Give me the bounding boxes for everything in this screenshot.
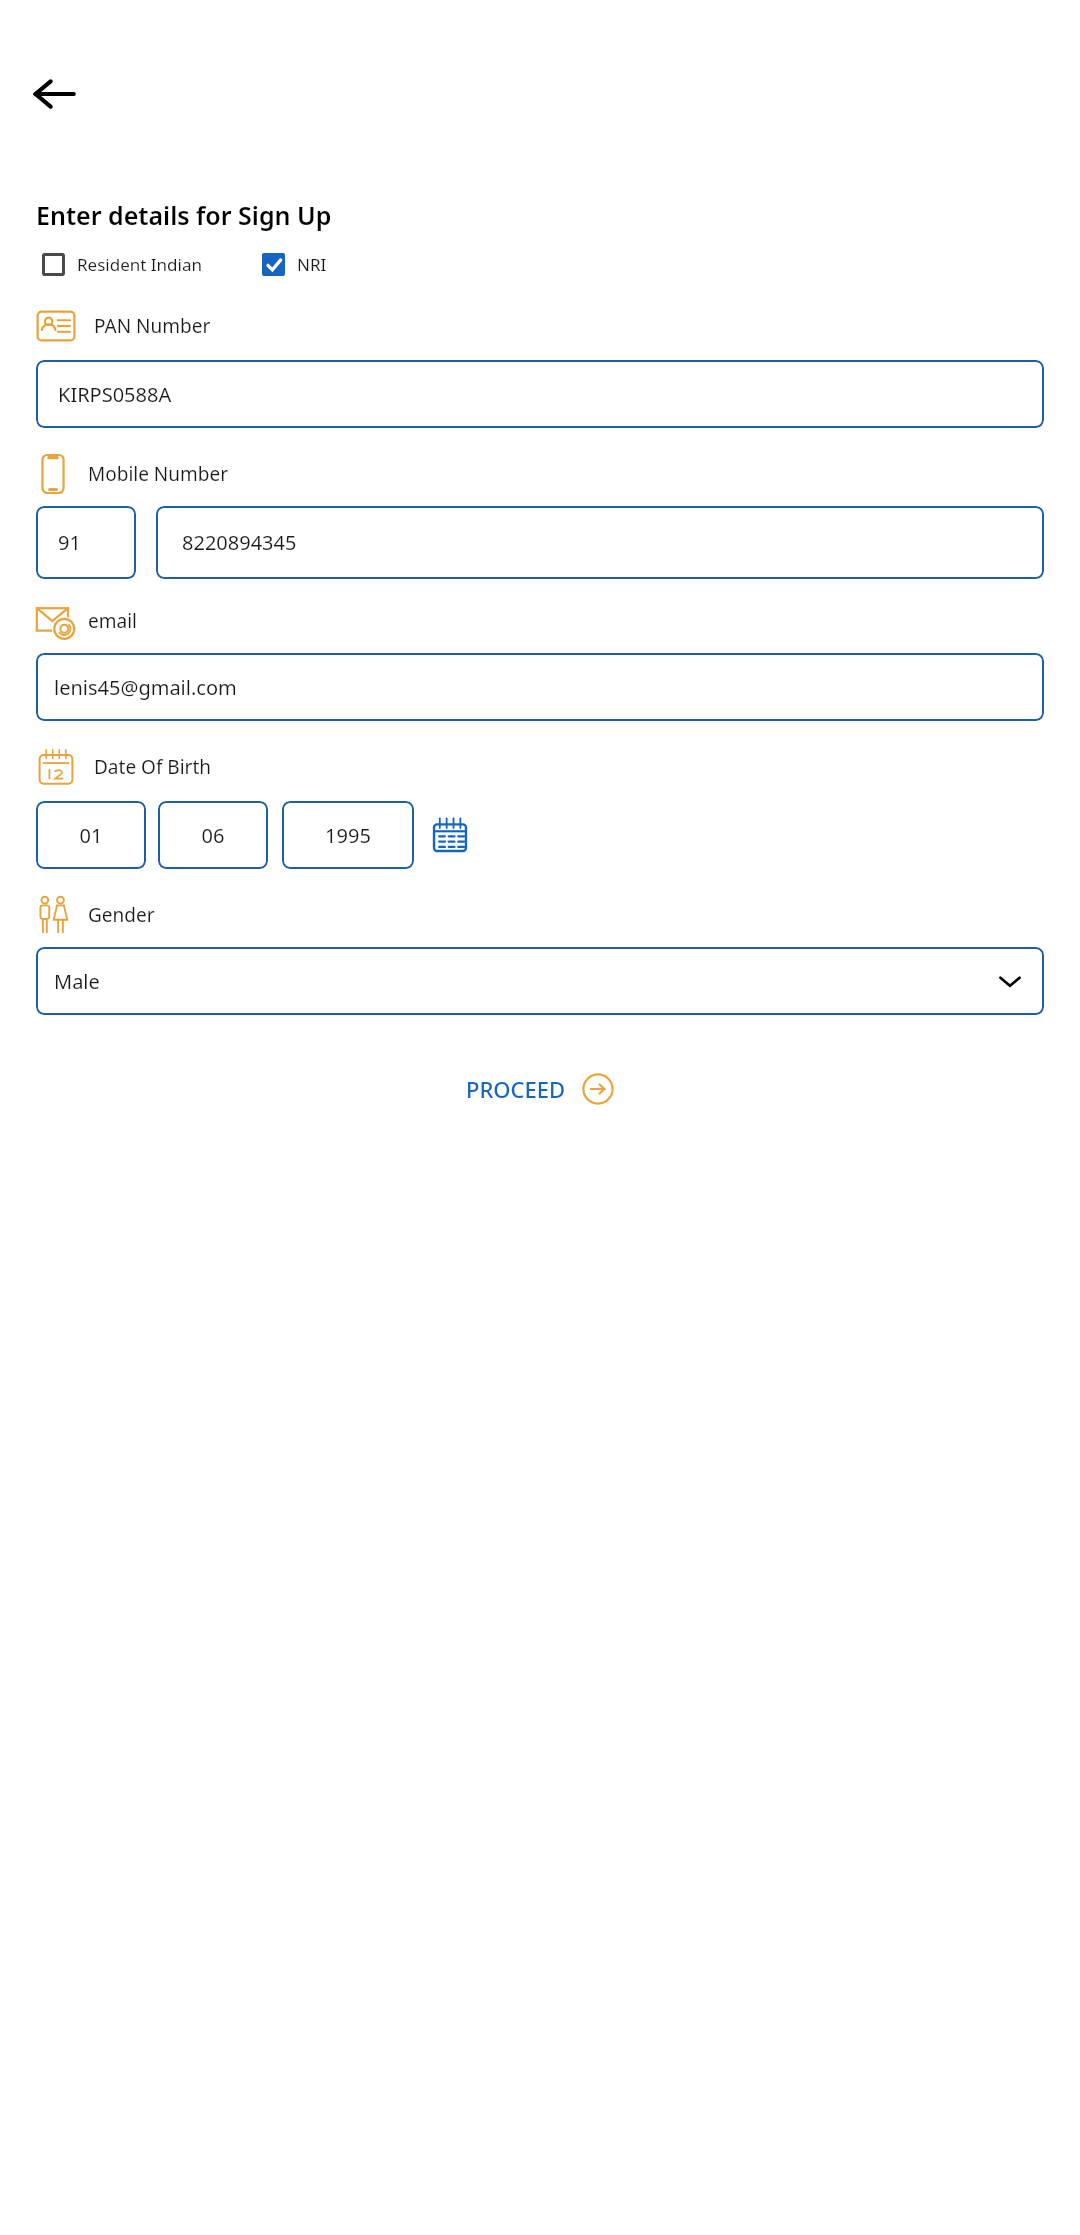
button[interactable]: 01 [36,801,146,869]
staticText: Male [54,968,100,995]
button[interactable]: 8220894345 [156,506,1044,579]
staticText: Resident Indian [77,253,202,276]
button[interactable]: 06 [158,801,268,869]
staticText: Enter details for Sign Up [36,198,332,232]
button[interactable]: KIRPS0588A [36,360,1044,428]
staticText: email [88,608,137,634]
button[interactable]: 1995 [282,801,414,869]
staticText: PAN Number [94,313,211,339]
staticText: 01 [36,822,146,849]
staticText: Date Of Birth [94,754,212,780]
button[interactable]: PROCEED [450,1065,630,1113]
button[interactable]: Resident Indian [42,253,202,276]
button[interactable]: Pick date [428,813,472,857]
button[interactable]: lenis45@gmail.com [36,653,1044,721]
staticText: Mobile Number [88,461,229,487]
staticText: 8220894345 [182,529,297,556]
button[interactable]: Back [22,62,86,126]
button[interactable]: 91 [36,506,136,579]
staticText: 1995 [282,822,414,849]
staticText: 91 [58,529,81,556]
staticText: Gender [88,902,155,928]
staticText: PROCEED [466,1074,566,1104]
button[interactable]: Male [36,947,1044,1015]
button[interactable]: NRI [262,253,327,276]
staticText: 06 [158,822,268,849]
staticText: NRI [297,253,327,276]
staticText: KIRPS0588A [58,381,172,408]
staticText: lenis45@gmail.com [54,674,237,701]
